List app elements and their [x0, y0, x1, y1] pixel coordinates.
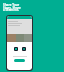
staticText: Share Your Story. Share a Moment.	[3, 3, 21, 12]
button[interactable]: Record	[22, 47, 26, 51]
button[interactable]	[14, 59, 25, 62]
button[interactable]: Camera	[14, 47, 18, 51]
